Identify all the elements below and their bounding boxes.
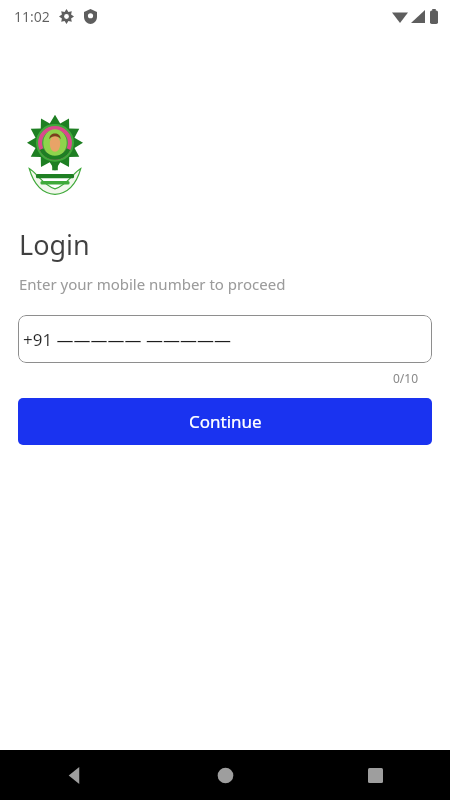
staticText: 0/10 xyxy=(393,370,419,386)
staticText: Continue xyxy=(189,410,262,433)
button[interactable]: +91 ————— ————— xyxy=(18,315,432,363)
button[interactable]: Continue xyxy=(18,398,432,445)
button[interactable]: Recent apps xyxy=(300,750,450,800)
staticText: Enter your mobile number to proceed xyxy=(19,274,286,294)
button[interactable]: Home xyxy=(150,750,300,800)
staticText: 11:02 xyxy=(14,7,50,26)
button[interactable]: Back xyxy=(0,750,150,800)
staticText: Login xyxy=(19,226,90,263)
staticText: +91 ————— ————— xyxy=(23,328,232,351)
